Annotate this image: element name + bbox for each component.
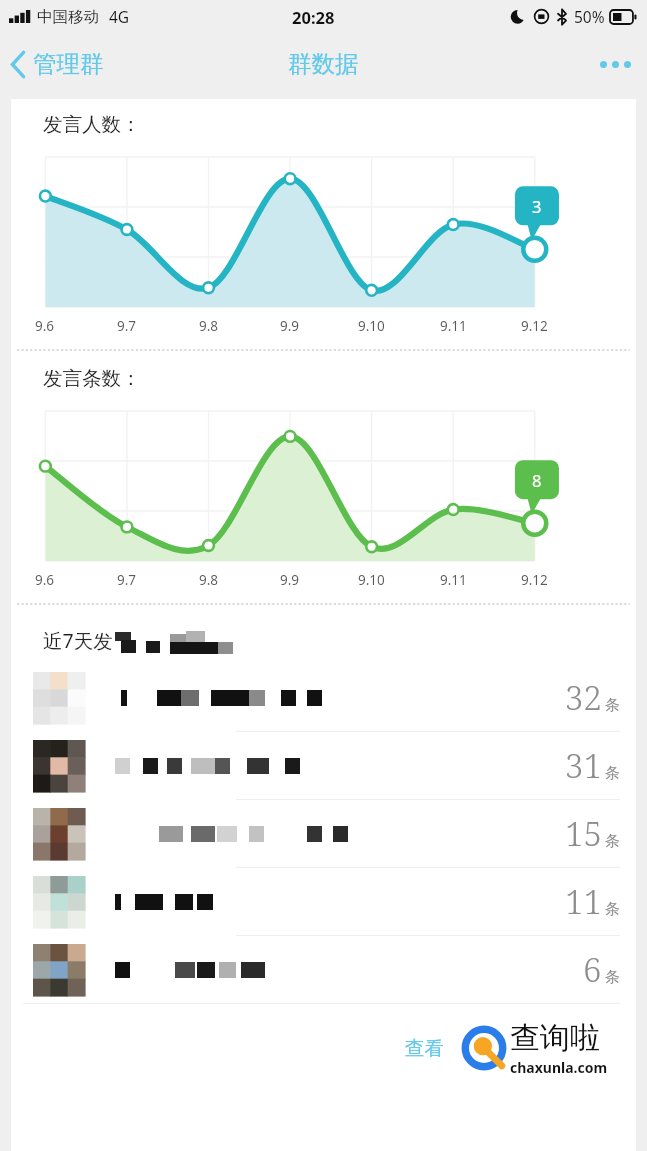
staticText: 9.6 — [35, 317, 55, 335]
staticText: 9.9 — [280, 317, 300, 335]
staticText: chaxunla.com — [510, 1058, 608, 1077]
staticText: 3 — [532, 195, 542, 217]
staticText: 9.9 — [280, 571, 300, 589]
staticText: 6 — [583, 947, 602, 992]
staticText: 9.10 — [358, 571, 385, 589]
button[interactable]: 6 — [11, 936, 636, 1003]
staticText: 条 — [605, 900, 620, 919]
staticText: 9.11 — [440, 317, 467, 335]
staticText: 条 — [605, 764, 620, 783]
button[interactable]: 32 — [11, 664, 636, 731]
staticText: 查询啦 — [510, 1019, 600, 1057]
staticText: 9.7 — [117, 317, 137, 335]
staticText: 4G — [109, 6, 130, 27]
staticText: 8 — [532, 469, 542, 491]
staticText: 发言人数： — [43, 112, 141, 137]
staticText: 近7天发 — [43, 627, 113, 654]
staticText: 9.8 — [199, 571, 219, 589]
button[interactable]: 31 — [11, 732, 636, 799]
staticText: 20:28 — [292, 6, 335, 28]
staticText: 9.10 — [358, 317, 385, 335]
staticText: 31 — [565, 743, 602, 788]
button[interactable]: More options — [584, 45, 647, 84]
staticText: 9.6 — [35, 571, 55, 589]
staticText: 32 — [565, 675, 602, 720]
button[interactable]: 15 — [11, 800, 636, 867]
staticText: 50% — [574, 6, 605, 27]
staticText: 15 — [565, 811, 602, 856]
staticText: 群数据 — [288, 49, 359, 79]
button[interactable]: 管理群 — [0, 41, 116, 87]
staticText: 9.7 — [117, 571, 137, 589]
staticText: 条 — [605, 968, 620, 987]
button[interactable]: chaxunla.com — [454, 1016, 626, 1080]
staticText: 发言条数： — [43, 366, 141, 391]
staticText: 9.12 — [521, 571, 548, 589]
staticText: 查看 — [405, 1036, 444, 1061]
staticText: 9.8 — [199, 317, 219, 335]
staticText: 条 — [605, 832, 620, 851]
staticText: 中国移动 — [37, 7, 99, 27]
staticText: 条 — [605, 696, 620, 715]
staticText: 11 — [565, 879, 602, 924]
button[interactable]: 11 — [11, 868, 636, 935]
staticText: 9.11 — [440, 571, 467, 589]
button[interactable]: 查看 — [397, 1028, 452, 1069]
staticText: 管理群 — [33, 49, 104, 79]
staticText: 9.12 — [521, 317, 548, 335]
